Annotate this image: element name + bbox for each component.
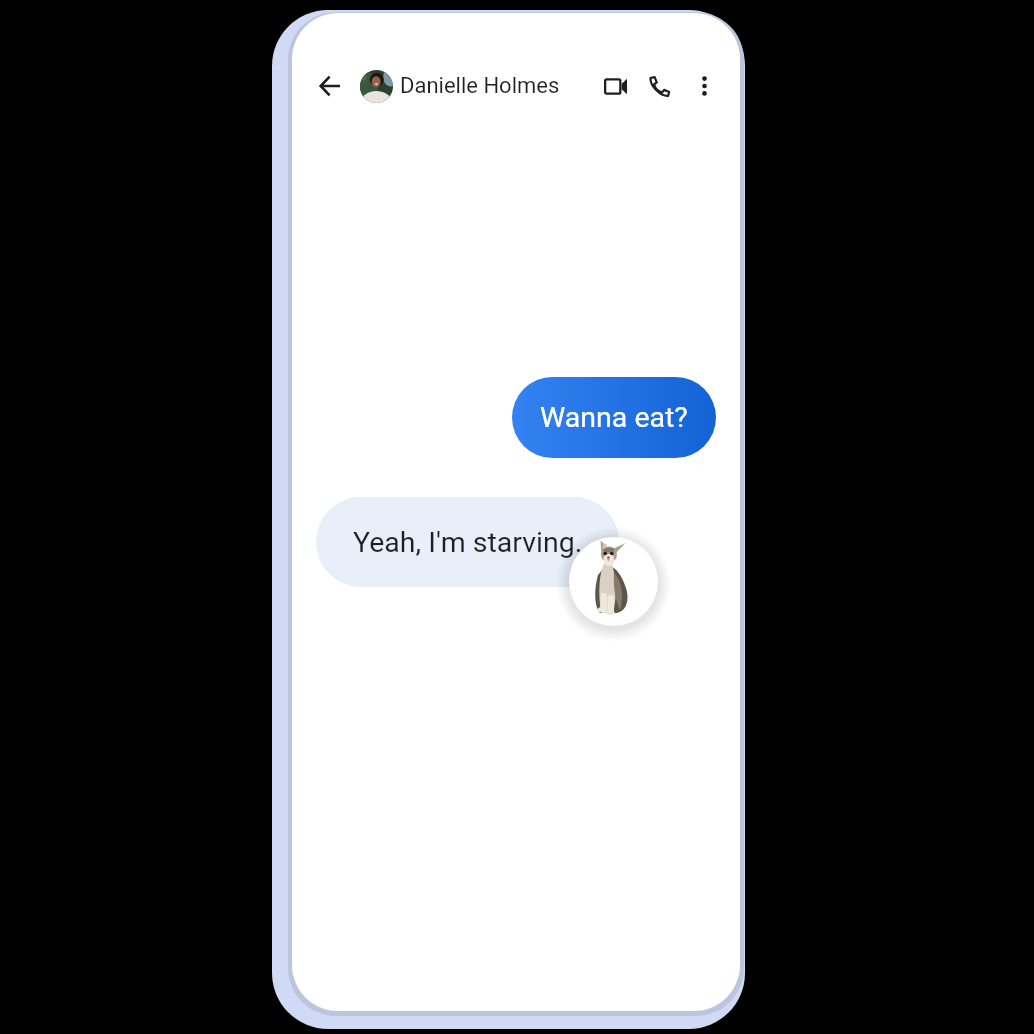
staticText: Yeah, I'm starving. xyxy=(353,526,583,559)
button[interactable]: Contact photo xyxy=(360,70,393,103)
button[interactable]: Yeah, I'm starving. xyxy=(316,497,619,587)
button[interactable]: Call xyxy=(639,66,679,106)
button[interactable]: Cat sticker xyxy=(569,537,658,626)
staticText: Danielle Holmes xyxy=(400,73,560,99)
staticText: Wanna eat? xyxy=(540,401,688,434)
button[interactable]: Back xyxy=(310,66,350,106)
button[interactable]: Wanna eat? xyxy=(512,377,716,458)
button[interactable]: Video call xyxy=(595,66,635,106)
button[interactable]: More options xyxy=(683,66,723,106)
